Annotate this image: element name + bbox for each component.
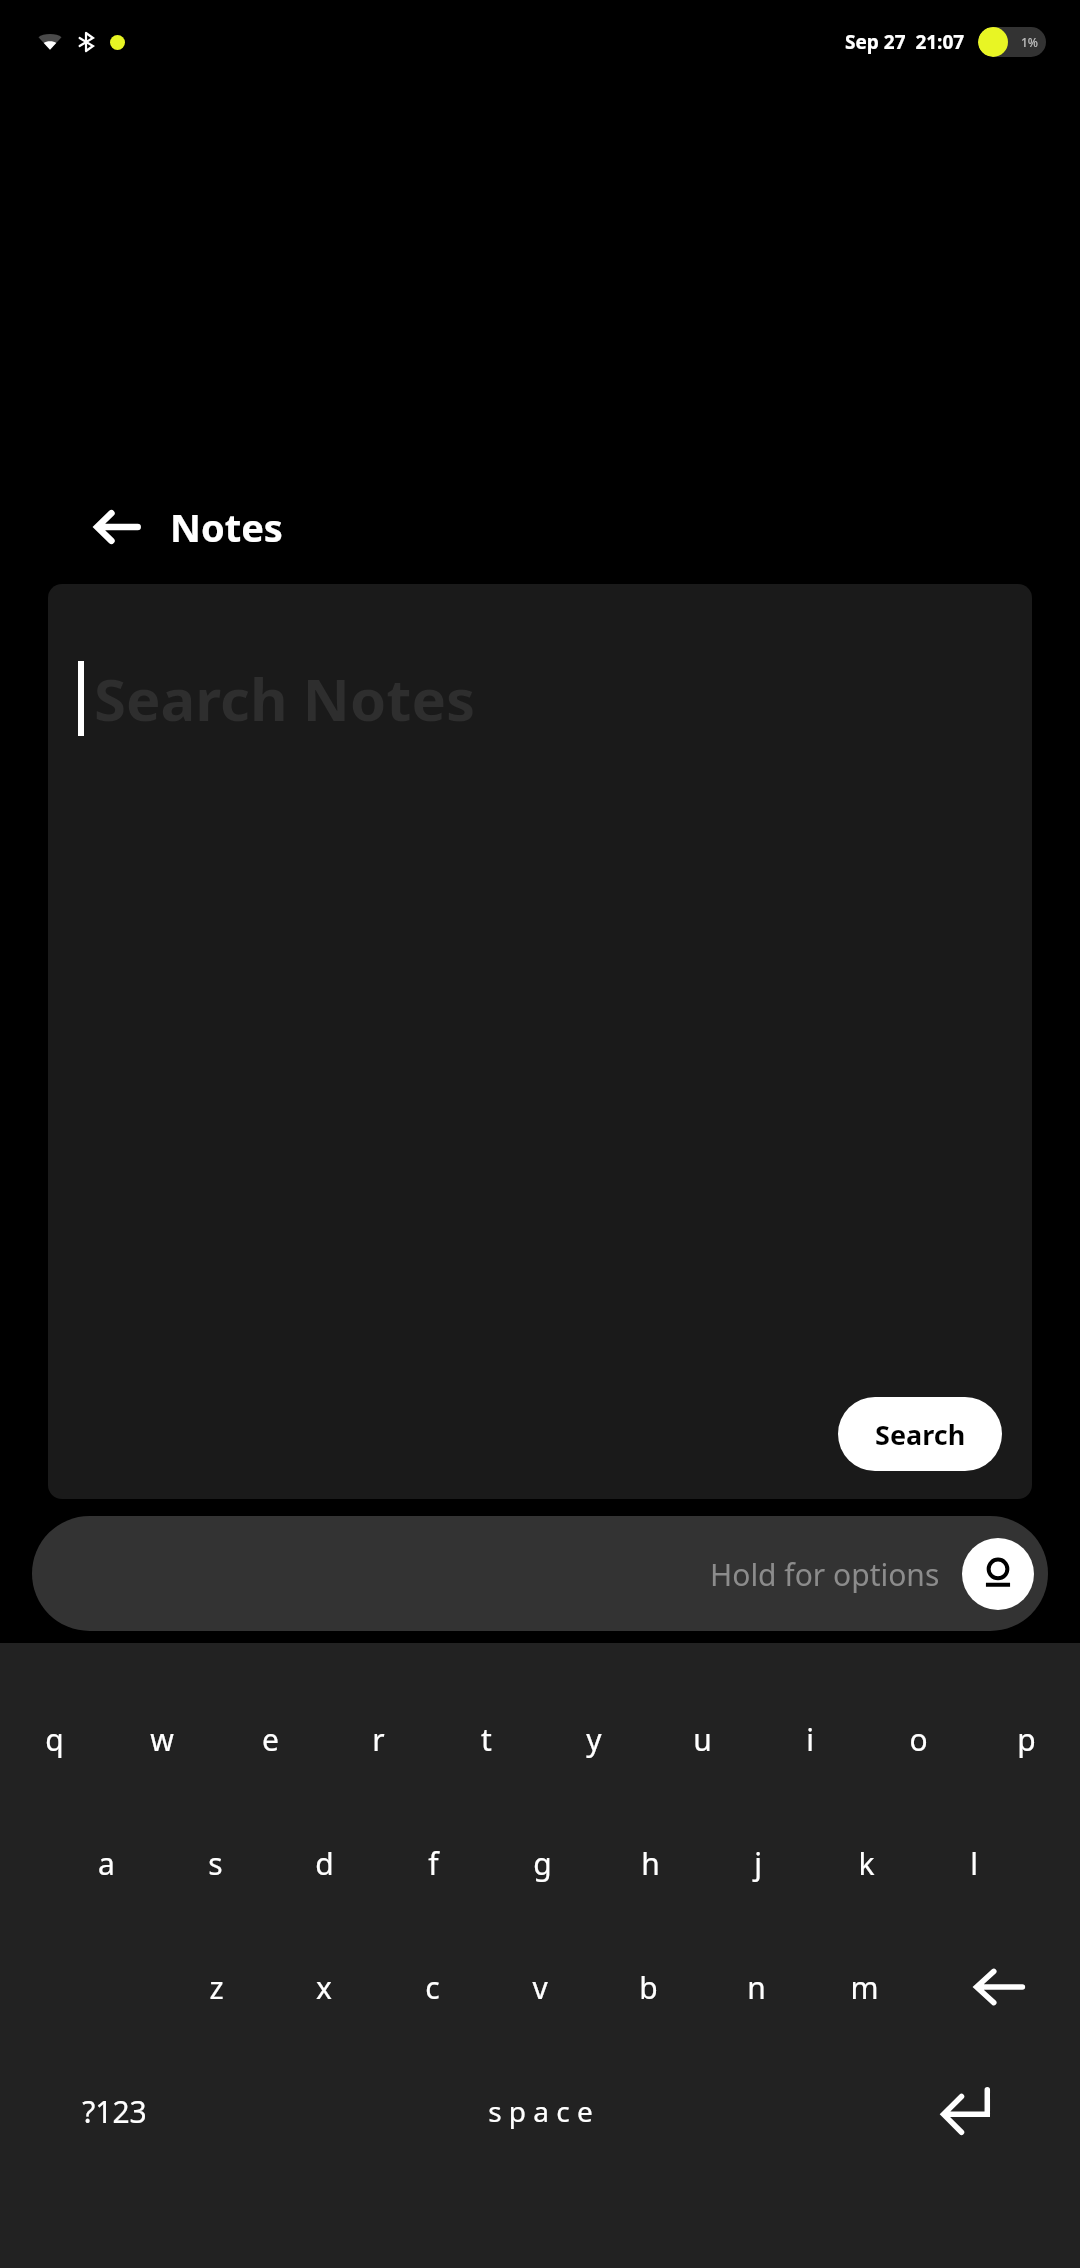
staticText: i <box>806 1719 814 1760</box>
button[interactable]: f <box>379 1801 488 1925</box>
button[interactable]: s <box>161 1801 270 1925</box>
staticText: k <box>858 1843 875 1884</box>
button[interactable]: Hold for options <box>32 1516 1048 1631</box>
staticText: t <box>481 1719 492 1760</box>
staticText: q <box>45 1719 64 1760</box>
button[interactable]: e <box>216 1677 324 1801</box>
button[interactable]: Enter <box>852 2049 1080 2173</box>
staticText: l <box>970 1843 978 1884</box>
button[interactable]: g <box>488 1801 596 1925</box>
button[interactable]: b <box>594 1925 702 2049</box>
staticText: u <box>693 1719 712 1760</box>
button[interactable]: h <box>596 1801 704 1925</box>
staticText: o <box>909 1719 928 1760</box>
button[interactable]: k <box>812 1801 920 1925</box>
staticText: ?123 <box>82 2091 147 2132</box>
button[interactable]: ?123 <box>0 2049 229 2173</box>
staticText: Search <box>875 1416 966 1453</box>
button[interactable]: y <box>540 1677 648 1801</box>
staticText: b <box>639 1967 658 2008</box>
button[interactable]: Back <box>88 498 146 556</box>
button[interactable]: u <box>648 1677 756 1801</box>
button[interactable]: p <box>972 1677 1080 1801</box>
button[interactable]: Search Notes <box>48 584 1032 1499</box>
button[interactable]: Voice input <box>962 1538 1034 1610</box>
staticText: d <box>315 1843 334 1884</box>
button[interactable]: m <box>810 1925 918 2049</box>
staticText: a <box>98 1843 115 1884</box>
button[interactable]: a <box>52 1801 161 1925</box>
staticText: s p a c e <box>488 2092 593 2130</box>
button[interactable]: c <box>378 1925 486 2049</box>
button[interactable]: i <box>756 1677 864 1801</box>
button[interactable]: l <box>920 1801 1028 1925</box>
button[interactable]: s p a c e <box>229 2049 852 2173</box>
staticText: s <box>208 1843 223 1884</box>
staticText: c <box>425 1967 440 2008</box>
button[interactable]: n <box>702 1925 810 2049</box>
button[interactable]: z <box>162 1925 270 2049</box>
button[interactable]: v <box>486 1925 594 2049</box>
staticText: w <box>150 1719 174 1760</box>
staticText: n <box>747 1967 766 2008</box>
button[interactable]: t <box>432 1677 540 1801</box>
staticText: r <box>372 1719 385 1760</box>
staticText: Hold for options <box>710 1554 940 1595</box>
staticText: m <box>850 1967 879 2008</box>
staticText: e <box>262 1719 279 1760</box>
button[interactable]: r <box>324 1677 432 1801</box>
button[interactable]: Search <box>838 1397 1002 1471</box>
staticText: y <box>586 1719 602 1760</box>
button[interactable]: d <box>270 1801 379 1925</box>
staticText: Notes <box>170 501 283 553</box>
button[interactable]: w <box>108 1677 216 1801</box>
staticText: f <box>428 1843 439 1884</box>
button[interactable]: q <box>0 1677 108 1801</box>
button[interactable]: o <box>864 1677 972 1801</box>
staticText: j <box>754 1843 762 1884</box>
button[interactable]: j <box>704 1801 812 1925</box>
staticText: g <box>533 1843 552 1884</box>
staticText: h <box>641 1843 660 1884</box>
staticText: v <box>532 1967 548 2008</box>
staticText: p <box>1017 1719 1036 1760</box>
staticText: x <box>316 1967 332 2008</box>
staticText: z <box>209 1967 224 2008</box>
button[interactable]: x <box>270 1925 378 2049</box>
button[interactable]: Backspace <box>918 1925 1080 2049</box>
staticText: Search Notes <box>94 659 476 738</box>
staticText: 1% <box>1021 34 1039 50</box>
staticText: Sep 27 21:07 <box>845 29 965 55</box>
